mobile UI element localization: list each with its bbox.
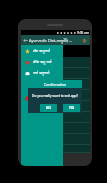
staticText: ग्रीष्म ऋतु चर्या (33, 59, 52, 64)
button[interactable]: ग्रीष्म ऋतु चर्या (21, 56, 63, 67)
staticText: 9:05 am (77, 31, 89, 35)
staticText: वर्षा ऋतुचर्या (33, 70, 50, 75)
staticText: Confirmation (44, 82, 67, 87)
button[interactable]: NO (40, 104, 57, 112)
staticText: एक बार करें (33, 95, 49, 100)
button[interactable]: YES (63, 104, 80, 112)
staticText: शीत ऋतुचर्या (33, 48, 50, 53)
staticText: Do you really want to exit app? (32, 94, 78, 98)
button[interactable]: शीत ऋतुचर्या (21, 45, 63, 56)
button[interactable]: एक बार करें (21, 92, 63, 103)
button[interactable]: Home (80, 35, 89, 45)
button[interactable]: Back (21, 35, 29, 45)
staticText: YES (69, 106, 75, 110)
staticText: Ayurvedic Diet-आयुर्वेदि ... (29, 38, 80, 43)
button[interactable]: वर्षा ऋतुचर्या (21, 67, 63, 78)
staticText: NO (46, 106, 51, 110)
